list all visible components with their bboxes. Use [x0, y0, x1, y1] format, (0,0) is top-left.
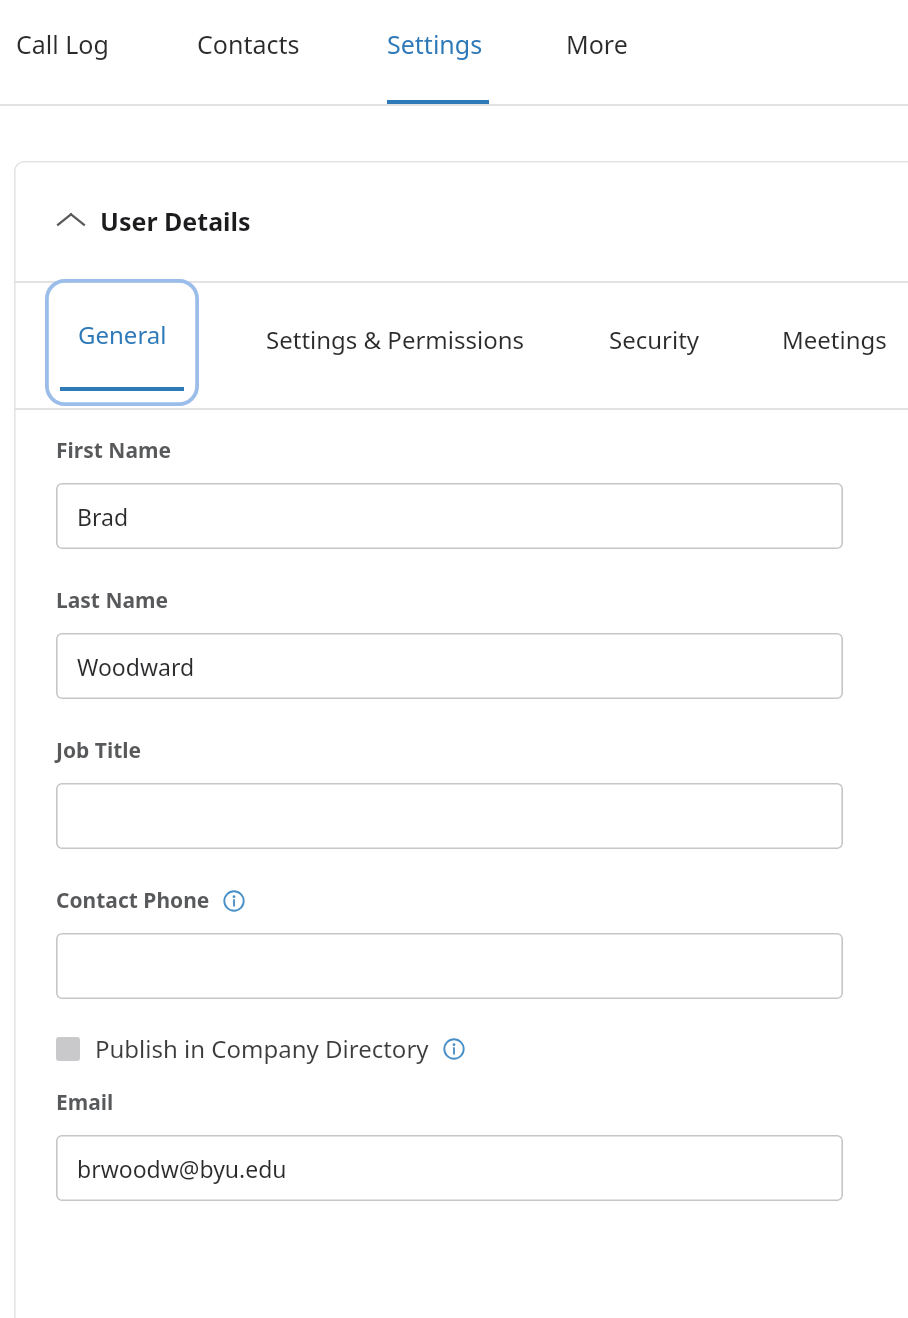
staticText: Call Log	[16, 27, 109, 61]
button[interactable]: Meetings	[754, 283, 908, 408]
button[interactable]: Security	[580, 283, 728, 408]
button[interactable]: Brad	[56, 483, 843, 549]
button[interactable]: More information	[223, 890, 245, 912]
staticText: Email	[56, 1088, 114, 1117]
staticText: Job Title	[56, 736, 142, 765]
staticText: Woodward	[77, 651, 195, 682]
button[interactable]: More information	[443, 1038, 465, 1060]
staticText: Contacts	[197, 27, 300, 61]
button[interactable]: General	[45, 279, 199, 406]
button[interactable]: Contacts	[197, 0, 327, 106]
staticText: Settings & Permissions	[266, 323, 524, 356]
staticText: Security	[609, 323, 700, 356]
staticText: Meetings	[782, 323, 887, 356]
staticText: brwoodw@byu.edu	[77, 1153, 287, 1184]
staticText: Brad	[77, 501, 129, 532]
button[interactable]: Collapse User Details	[14, 161, 908, 281]
other: Collapse User Details	[56, 206, 86, 236]
staticText: First Name	[56, 436, 171, 465]
staticText: User Details	[100, 204, 251, 238]
button[interactable]: Settings & Permissions	[235, 283, 555, 408]
button[interactable]: Call Log	[16, 0, 146, 106]
button[interactable]: More	[566, 0, 656, 106]
staticText: Publish in Company Directory	[95, 1032, 429, 1065]
button[interactable]	[56, 933, 843, 999]
staticText: Contact Phone	[56, 886, 210, 915]
staticText: Settings	[387, 27, 483, 61]
button[interactable]: Publish in Company Directory	[56, 1032, 465, 1065]
staticText: More	[566, 27, 628, 61]
staticText: General	[78, 318, 167, 351]
staticText: Last Name	[56, 586, 169, 615]
button[interactable]: brwoodw@byu.edu	[56, 1135, 843, 1201]
button[interactable]	[56, 783, 843, 849]
button[interactable]: Settings	[387, 0, 491, 106]
button[interactable]: Woodward	[56, 633, 843, 699]
